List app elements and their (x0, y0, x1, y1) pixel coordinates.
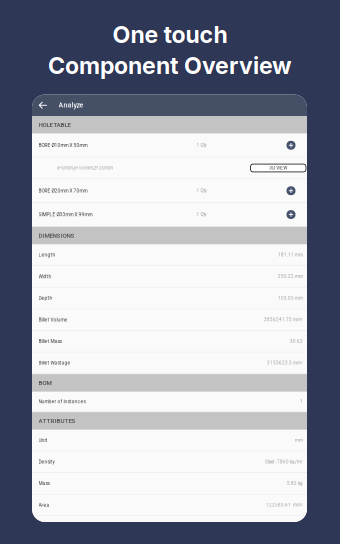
button[interactable]: 3D VIEW (250, 164, 306, 172)
staticText: Billet Mass (38, 338, 61, 344)
staticText: 122583.61 mm² (266, 502, 303, 508)
staticText: Billet Volume (38, 317, 67, 322)
staticText: x=0mm,y=55mm,z=20mm (57, 165, 113, 171)
staticText: Length (38, 252, 55, 258)
button[interactable]: Billet Mass (32, 331, 307, 352)
staticText: Component Overview (48, 52, 292, 80)
staticText: One touch (112, 20, 227, 49)
staticText: Number of instances (38, 399, 85, 404)
staticText: Analyze (58, 101, 83, 109)
staticText: 3836241.75 mm³ (264, 317, 303, 322)
button[interactable]: BORE Ø20mm X 70mm (32, 179, 307, 203)
staticText: 3155623.5 mm³ (267, 360, 303, 365)
staticText: Steel - 7860 kg/m³ (265, 459, 303, 464)
staticText: DIMENSIONS (38, 232, 74, 239)
staticText: SIMPLE Ø33mm X 99mm (38, 212, 92, 217)
button[interactable]: Depth (32, 288, 307, 309)
button[interactable]: BORE Ø10mm X 50mm (32, 134, 307, 157)
staticText: Mass (38, 481, 49, 486)
staticText: mm (295, 438, 303, 443)
staticText: Density (38, 459, 54, 465)
staticText: 250.22 mm (278, 274, 303, 279)
staticText: BOM (38, 379, 51, 387)
button[interactable]: Unit (32, 430, 307, 451)
button[interactable]: Mass (32, 473, 307, 495)
staticText: 1 Qty (196, 212, 206, 217)
button[interactable]: Number of instances (32, 392, 307, 412)
button[interactable]: Total Weight (32, 516, 307, 538)
staticText: BORE Ø10mm X 50mm (38, 142, 87, 148)
staticText: 181.11 mm (278, 252, 303, 257)
staticText: 1 (300, 399, 303, 404)
button[interactable]: Area (32, 495, 307, 516)
staticText: 3D VIEW (269, 165, 287, 171)
staticText: Unit (38, 437, 47, 443)
staticText: 5.82 kg (287, 481, 303, 486)
staticText: Depth (38, 295, 52, 301)
staticText: HOLE TABLE (38, 121, 70, 128)
button[interactable]: SIMPLE Ø33mm X 99mm (32, 203, 307, 227)
staticText: ATTRIBUTES (38, 417, 75, 425)
button[interactable]: Billet Wastage (32, 352, 307, 374)
button[interactable]: Density (32, 451, 307, 473)
button[interactable]: Length (32, 244, 307, 266)
staticText: 103.05 mm (278, 295, 303, 301)
staticText: 1 Qty (196, 188, 206, 193)
staticText: BORE Ø20mm X 70mm (38, 188, 87, 193)
staticText: 30.62 (290, 339, 303, 344)
staticText: Billet Wastage (38, 360, 70, 366)
staticText: Area (38, 502, 49, 508)
staticText: 1 Qty (196, 143, 206, 148)
button[interactable]: Width (32, 266, 307, 288)
staticText: Width (38, 274, 51, 279)
button[interactable]: Billet Volume (32, 309, 307, 331)
button[interactable]: Back (38, 94, 47, 116)
